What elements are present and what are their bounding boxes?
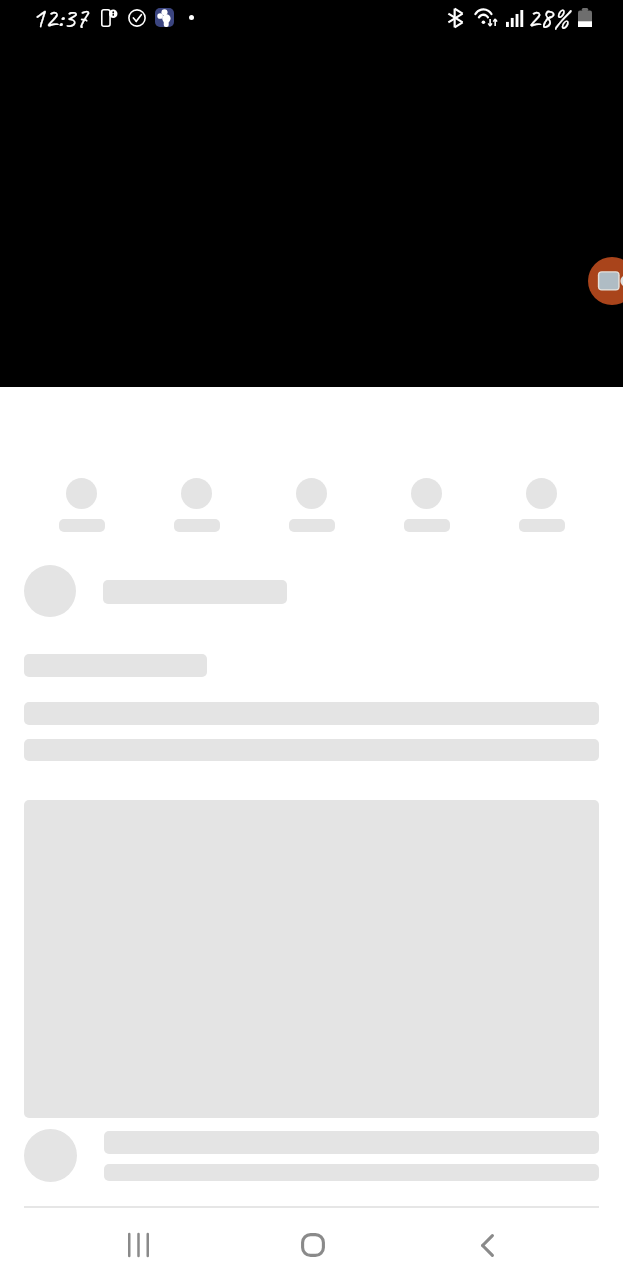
button[interactable]: Shortcut <box>24 470 139 540</box>
staticText: 12:37 <box>32 0 88 35</box>
button[interactable]: Shortcut <box>139 470 254 540</box>
button[interactable]: Account header <box>24 565 599 617</box>
staticText: 28% <box>527 0 570 35</box>
button[interactable]: Back <box>457 1221 517 1269</box>
button[interactable]: Shortcut <box>484 470 599 540</box>
button[interactable]: Shortcut <box>369 470 484 540</box>
button[interactable]: Recent apps <box>108 1221 168 1269</box>
button[interactable]: Home <box>283 1221 343 1269</box>
button[interactable]: Shortcut <box>254 470 369 540</box>
button[interactable]: Screen recorder <box>588 257 623 305</box>
button[interactable]: Comment <box>24 1129 599 1182</box>
